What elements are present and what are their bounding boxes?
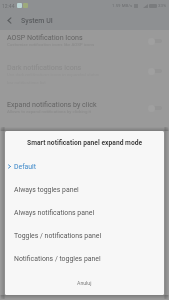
staticText: Expand notifications by click <box>7 100 97 108</box>
staticText: Customize notification icons like AOSP i… <box>7 42 95 47</box>
staticText: AOSP Notification Icons <box>7 33 83 41</box>
staticText: 33% <box>158 3 167 8</box>
button[interactable]: Always notifications panel <box>5 201 164 224</box>
staticText: Smart notification panel expand mode <box>27 139 143 147</box>
button[interactable]: Anuluj <box>5 271 164 295</box>
button[interactable]: Navigate up <box>0 11 19 30</box>
button[interactable]: Default <box>5 155 164 178</box>
staticText: Default <box>14 163 37 171</box>
button[interactable]: Always toggles panel <box>5 178 164 201</box>
staticText: System UI <box>21 17 53 25</box>
staticText: 1.59 MB/s <box>112 3 133 8</box>
staticText: Anuluj <box>77 280 92 286</box>
button[interactable]: Notifications / toggles panel <box>5 247 164 270</box>
staticText: Allows to expand notifications by clicki… <box>7 109 91 114</box>
staticText: Dark notifications icons <box>7 63 82 71</box>
button[interactable]: Toggles / notifications panel <box>5 224 164 247</box>
staticText: Notifications / toggles panel <box>14 255 101 263</box>
staticText: Always notifications panel <box>14 209 95 217</box>
staticText: Toggles / notifications panel <box>14 232 102 240</box>
button[interactable]: AOSP Notification Icons <box>0 30 169 49</box>
staticText: 12:44 <box>2 3 15 9</box>
staticText: Always toggles panel <box>14 186 79 194</box>
button[interactable]: Expand notifications by click <box>0 85 169 116</box>
